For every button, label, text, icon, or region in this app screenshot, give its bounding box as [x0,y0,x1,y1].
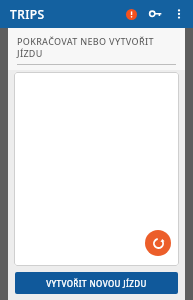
staticText: VYTVOŘIT NOVOU JÍZDU [46,278,147,289]
button[interactable]: Key [143,2,167,26]
button[interactable]: Restore trip [145,230,171,256]
button[interactable]: VYTVOŘIT NOVOU JÍZDU [15,272,178,294]
staticText: POKRAČOVAT NEBO VYTVOŘIT JÍZDU [17,35,179,59]
button[interactable]: Alerts [119,2,143,26]
staticText: TRIPS [10,6,45,22]
button[interactable] [14,72,179,266]
button[interactable]: More options [167,2,191,26]
